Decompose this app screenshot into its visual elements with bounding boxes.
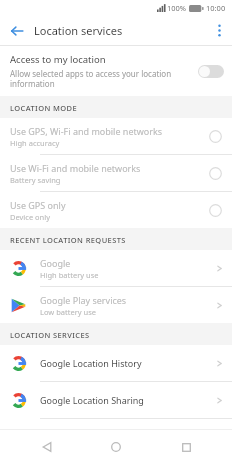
button[interactable]: Use GPS only: [0, 192, 232, 228]
staticText: Use GPS only: [10, 199, 66, 211]
staticText: Google Play services: [40, 294, 127, 306]
button[interactable]: Access to my location toggle: [198, 65, 224, 78]
button[interactable]: Home: [93, 430, 139, 464]
staticText: 100%: [167, 3, 187, 13]
staticText: LOCATION MODE: [10, 103, 78, 113]
button[interactable]: Back: [0, 16, 34, 45]
staticText: Access to my location: [10, 53, 106, 66]
button[interactable]: Google Play services: [0, 287, 232, 323]
button[interactable]: Access to my location: [0, 46, 232, 96]
staticText: High battery use: [40, 270, 99, 280]
button[interactable]: Back: [24, 430, 70, 464]
staticText: Use Wi-Fi and mobile networks: [10, 162, 141, 174]
staticText: LOCATION SERVICES: [10, 330, 90, 340]
button[interactable]: Google Location History: [0, 345, 232, 381]
staticText: Low battery use: [40, 307, 96, 317]
staticText: RECENT LOCATION REQUESTS: [10, 235, 126, 245]
button[interactable]: Recent apps: [163, 430, 209, 464]
staticText: Google: [40, 257, 71, 269]
staticText: Allow selected apps to access your locat…: [10, 68, 192, 89]
button[interactable]: Google Location Sharing: [0, 382, 232, 418]
staticText: Use GPS, Wi-Fi and mobile networks: [10, 125, 163, 137]
staticText: Device only: [10, 212, 51, 222]
staticText: 10:00: [206, 3, 226, 13]
button[interactable]: More options: [206, 16, 232, 45]
staticText: Google Location Sharing: [40, 394, 144, 406]
button[interactable]: Use GPS, Wi-Fi and mobile networks: [0, 118, 232, 154]
button[interactable]: Google: [0, 250, 232, 286]
staticText: Location services: [34, 23, 206, 38]
staticText: Google Location History: [40, 357, 142, 369]
staticText: Battery saving: [10, 175, 61, 185]
staticText: High accuracy: [10, 138, 60, 148]
button[interactable]: Use Wi-Fi and mobile networks: [0, 155, 232, 191]
